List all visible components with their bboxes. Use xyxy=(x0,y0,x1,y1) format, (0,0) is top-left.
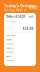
staticText: Cold Brew xyxy=(6,47,13,49)
button[interactable]: Avo Toast xyxy=(6,50,34,54)
staticText: Tuesday, March 4 xyxy=(4,8,26,12)
staticText: Order #1428 xyxy=(6,15,25,18)
staticText: Open xyxy=(29,16,33,18)
staticText: Oat Latte xyxy=(6,39,11,41)
button[interactable]: Cold Brew xyxy=(6,46,34,50)
staticText: Matcha xyxy=(6,56,11,57)
button[interactable]: Matcha xyxy=(6,54,34,59)
staticText: Scone x3 xyxy=(6,43,13,45)
staticText: Today's Orders xyxy=(4,3,34,8)
staticText: Croissant xyxy=(6,60,13,62)
staticText: $24.80 xyxy=(23,27,34,30)
staticText: Espresso x2 xyxy=(6,35,16,36)
staticText: Total xyxy=(6,28,9,30)
button[interactable]: Scone x3 xyxy=(6,42,34,46)
staticText: Pickup 4:00 PM xyxy=(6,21,16,23)
button[interactable]: Croissant xyxy=(6,59,34,63)
staticText: Filter xyxy=(29,5,36,9)
button[interactable]: Filter xyxy=(28,5,38,9)
button[interactable]: Espresso x2 xyxy=(6,33,34,38)
staticText: Avo Toast xyxy=(6,51,13,53)
button[interactable]: Oat Latte xyxy=(6,38,34,42)
